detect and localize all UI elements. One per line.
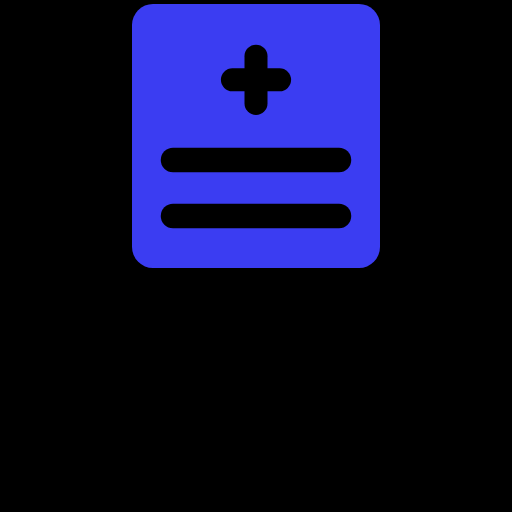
button[interactable]: New prescription note bbox=[0, 0, 512, 512]
